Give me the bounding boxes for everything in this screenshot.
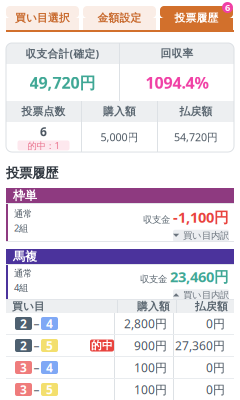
button[interactable]: 買い目選択	[6, 6, 79, 30]
staticText: 買い目内訳	[183, 230, 229, 241]
staticText: 馬複	[13, 249, 37, 264]
staticText: 買い目	[12, 300, 45, 313]
staticText: 27,360円	[175, 337, 225, 353]
staticText: 5	[46, 381, 53, 397]
staticText: 投票履歴	[6, 165, 58, 181]
staticText: 5	[46, 337, 53, 353]
staticText: 回収率	[160, 47, 193, 60]
staticText: 900円	[134, 337, 167, 353]
staticText: 0円	[206, 381, 225, 397]
staticText: 通常	[14, 268, 32, 279]
staticText: 収支金	[143, 214, 170, 225]
staticText: 2	[20, 315, 27, 331]
staticText: 4組	[14, 281, 28, 294]
staticText: 通常	[14, 208, 32, 220]
staticText: 3	[20, 359, 27, 375]
staticText: 枠単	[13, 188, 37, 203]
staticText: 的中：1	[27, 139, 59, 152]
staticText: 2	[20, 337, 27, 353]
staticText: 投票履歴	[174, 11, 218, 24]
staticText: 4	[46, 315, 53, 331]
staticText: 0円	[206, 315, 225, 331]
staticText: 100円	[134, 381, 167, 397]
staticText: 3	[20, 381, 27, 397]
staticText: 2,800円	[124, 315, 167, 331]
staticText: 49,720円	[29, 72, 95, 93]
staticText: 購入額	[137, 300, 170, 313]
staticText: 2組	[14, 222, 28, 234]
staticText: 払戻額	[179, 105, 212, 118]
staticText: 23,460円	[170, 267, 229, 286]
staticText: 収支金	[140, 273, 167, 285]
staticText: 100円	[134, 359, 167, 375]
staticText: 4	[46, 359, 53, 375]
staticText: –	[33, 381, 39, 397]
button[interactable]: 買い目内訳	[173, 289, 229, 301]
staticText: –	[33, 315, 39, 331]
staticText: 収支合計(確定)	[25, 46, 99, 61]
button[interactable]: 金額設定	[83, 6, 156, 30]
staticText: 払戻額	[195, 300, 228, 313]
staticText: 1094.4%	[145, 72, 208, 93]
button[interactable]: 投票履歴	[160, 6, 233, 30]
staticText: 的中	[91, 339, 113, 352]
staticText: 金額設定	[97, 11, 141, 24]
staticText: 0円	[206, 359, 225, 375]
staticText: –	[33, 359, 39, 375]
staticText: 購入額	[103, 105, 136, 118]
staticText: 買い目選択	[15, 11, 70, 24]
staticText: 54,720円	[174, 130, 218, 144]
staticText: 投票点数	[21, 105, 65, 118]
staticText: 6	[225, 1, 230, 14]
staticText: 5,000円	[100, 130, 138, 144]
staticText: 買い目内訳	[183, 289, 229, 301]
staticText: –	[33, 337, 39, 353]
staticText: -1,100円	[173, 207, 229, 227]
button[interactable]: 買い目内訳	[173, 230, 229, 242]
staticText: 6	[40, 123, 47, 139]
